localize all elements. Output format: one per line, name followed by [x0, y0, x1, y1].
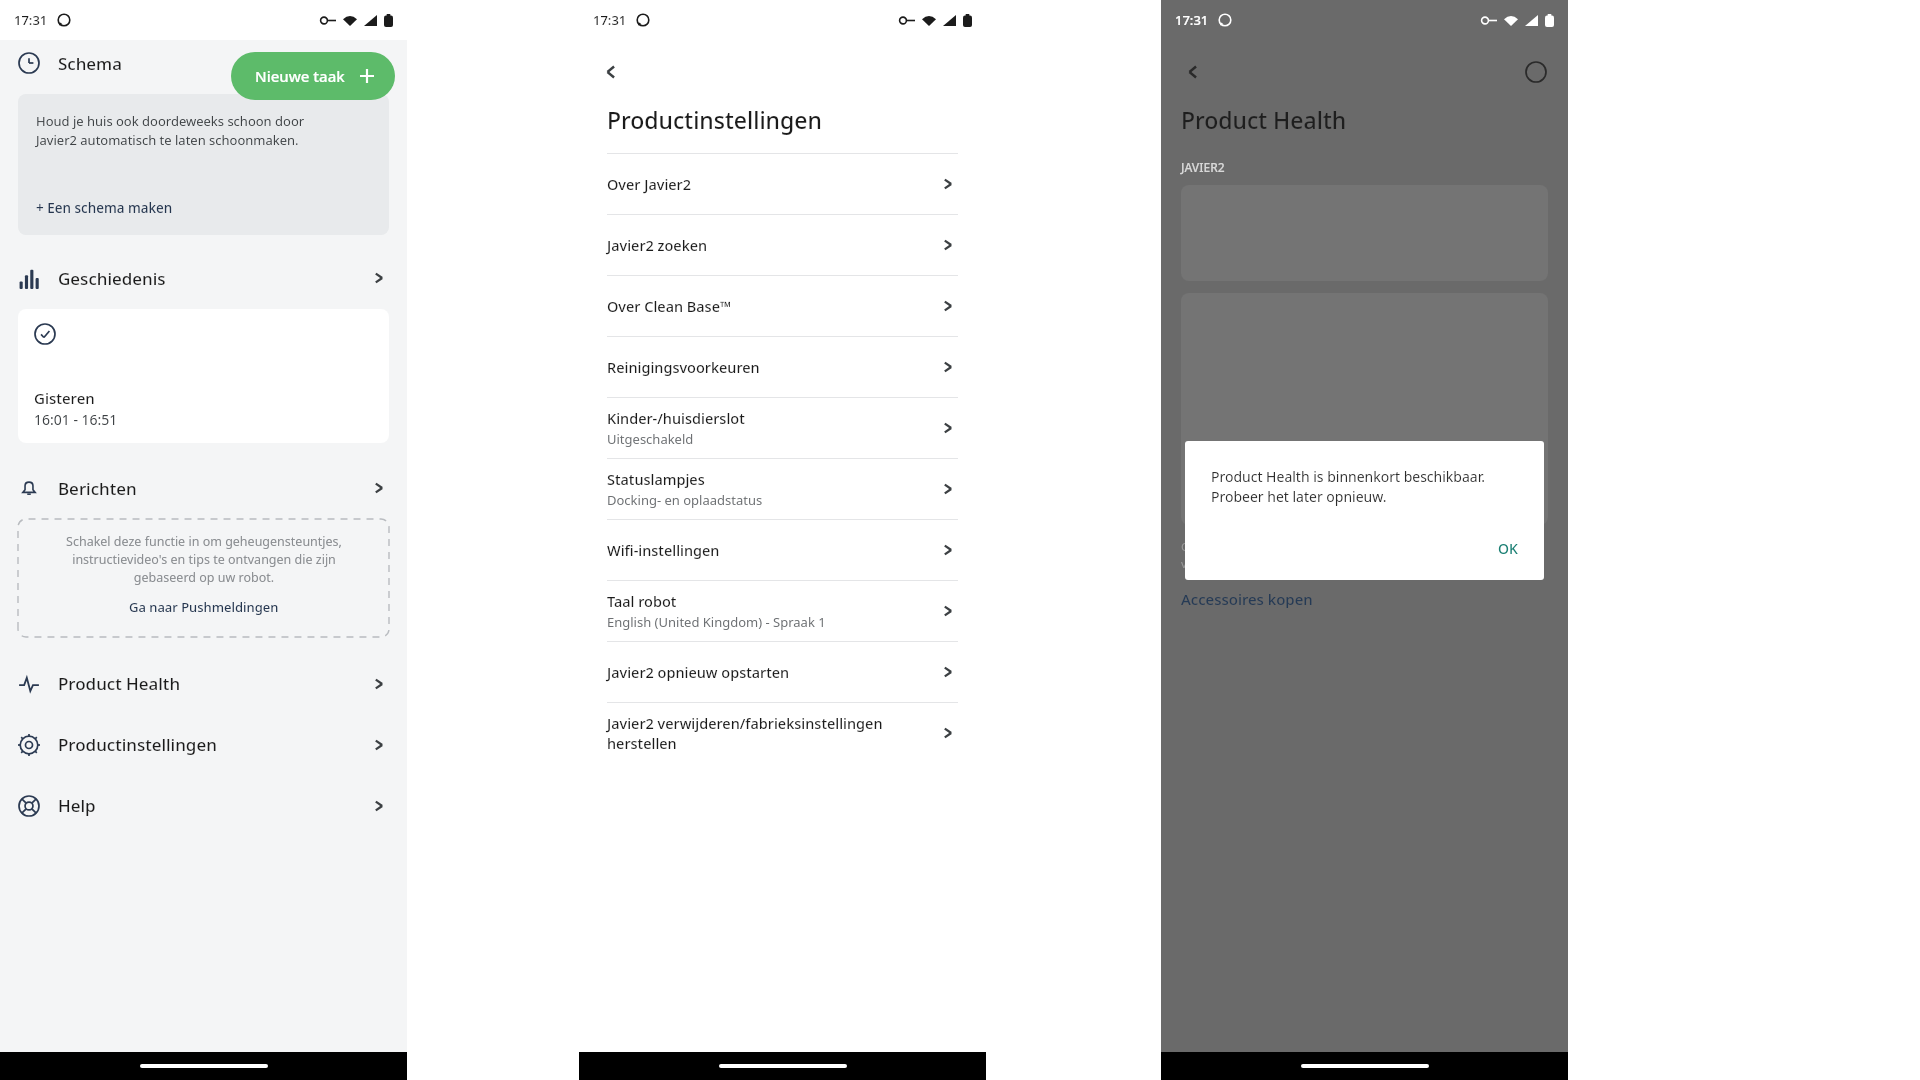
staticText: Over Javier2 [607, 174, 692, 194]
button[interactable]: OK [1472, 529, 1544, 568]
staticText: Productinstellingen [607, 104, 822, 135]
button[interactable]: Help [1518, 54, 1554, 90]
button[interactable]: Javier2 verwijderen/fabrieksinstellingen… [579, 703, 986, 763]
button[interactable]: Javier2 zoeken [579, 215, 986, 275]
staticText: Kinder-/huisdierslot [607, 408, 745, 428]
button[interactable]: Accessoires kopen [1181, 589, 1313, 609]
staticText: 17:31 [593, 11, 627, 29]
staticText: 17:31 [1175, 11, 1209, 29]
staticText: Nieuwe taak [255, 66, 345, 86]
staticText: Over Clean Base™ [607, 296, 732, 316]
button[interactable]: Berichten [0, 465, 407, 511]
staticText: Product Health [58, 672, 181, 695]
staticText: Javier2 zoeken [607, 235, 708, 255]
staticText: Product Health is binnenkort beschikbaar… [1211, 467, 1485, 507]
button[interactable]: Schakel deze functie in om geheugensteun… [18, 519, 389, 637]
staticText: Reinigingsvoorkeuren [607, 357, 760, 377]
staticText: JAVIER2 [1181, 159, 1225, 175]
staticText: Geschiedenis [58, 267, 166, 290]
button[interactable]: Wifi-instellingen [579, 520, 986, 580]
staticText: Berichten [58, 477, 137, 500]
button[interactable]: Houd je huis ook doordeweeks schoon door… [18, 94, 389, 235]
staticText: OK [1498, 539, 1518, 558]
button[interactable]: Statuslampjes [579, 459, 986, 519]
staticText: Schakel deze functie in om geheugensteun… [66, 533, 342, 586]
button[interactable]: Back [1175, 54, 1211, 90]
staticText: Taal robot [607, 591, 677, 611]
staticText: Gisteren [34, 388, 95, 408]
button[interactable]: Product Health [0, 653, 407, 714]
staticText: Product Health [1181, 104, 1347, 135]
button[interactable]: Gisteren [18, 309, 389, 443]
button[interactable]: Kinder-/huisdierslot [579, 398, 986, 458]
button[interactable]: Help [0, 775, 407, 836]
staticText: Houd je huis ook doordeweeks schoon door… [36, 112, 305, 149]
staticText: Javier2 verwijderen/fabrieksinstellingen… [607, 713, 938, 753]
staticText: + Een schema maken [36, 199, 173, 217]
button[interactable]: Geschiedenis [0, 255, 407, 301]
staticText: Help [58, 794, 96, 817]
button[interactable]: Nieuwe taak [231, 52, 395, 100]
button[interactable]: Back [593, 54, 629, 90]
button[interactable]: Taal robot [579, 581, 986, 641]
button[interactable]: Over Javier2 [579, 154, 986, 214]
staticText: Schema [58, 52, 122, 75]
button[interactable]: Reinigingsvoorkeuren [579, 337, 986, 397]
button[interactable]: Javier2 opnieuw opstarten [579, 642, 986, 702]
staticText: 17:31 [14, 11, 48, 29]
staticText: Opmerking: De statussen zijn gebaseerd o… [1181, 539, 1523, 571]
staticText: Javier2 opnieuw opstarten [607, 662, 790, 682]
button[interactable]: Schema [0, 40, 407, 86]
staticText: Docking- en oplaadstatus [607, 491, 763, 509]
staticText: English (United Kingdom) - Spraak 1 [607, 613, 826, 631]
button[interactable]: Over Clean Base™ [579, 276, 986, 336]
staticText: Statuslampjes [607, 469, 705, 489]
button[interactable]: Productinstellingen [0, 714, 407, 775]
staticText: 16:01 - 16:51 [34, 410, 118, 429]
staticText: Productinstellingen [58, 733, 217, 756]
staticText: Ga naar Pushmeldingen [129, 598, 279, 616]
staticText: Wifi-instellingen [607, 540, 720, 560]
staticText: Uitgeschakeld [607, 430, 694, 448]
